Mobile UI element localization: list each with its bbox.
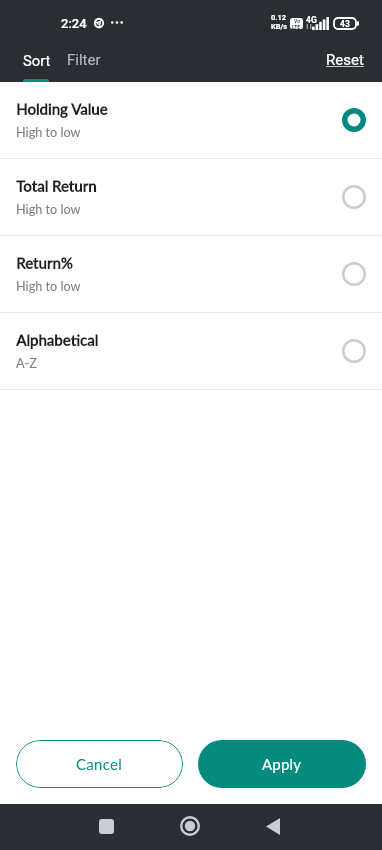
button[interactable]: Cancel — [16, 740, 183, 788]
button[interactable]: Return% — [0, 236, 382, 313]
staticText: A-Z — [16, 355, 37, 370]
staticText: KB/s — [271, 22, 288, 31]
button[interactable]: Holding Value — [0, 82, 382, 159]
staticText: 2:24 — [61, 16, 87, 31]
button[interactable]: Back — [243, 804, 303, 848]
staticText: Reset — [326, 51, 364, 69]
button[interactable]: Apply — [198, 740, 366, 788]
button[interactable]: Recent apps — [76, 804, 136, 848]
staticText: LTE — [292, 24, 301, 29]
button[interactable]: Filter — [60, 42, 110, 78]
staticText: Vo — [294, 18, 300, 24]
button[interactable]: Total Return — [0, 159, 382, 236]
staticText: 43 — [340, 19, 350, 29]
button[interactable]: Reset — [316, 42, 382, 78]
staticText: Holding Value — [16, 100, 108, 118]
staticText: Alphabetical — [16, 331, 99, 349]
staticText: Return% — [16, 254, 73, 272]
staticText: High to low — [16, 124, 81, 139]
staticText: Filter — [67, 51, 101, 69]
staticText: Total Return — [16, 177, 97, 195]
staticText: High to low — [16, 278, 81, 293]
button[interactable]: Sort — [0, 43, 60, 78]
staticText: Apply — [262, 755, 302, 773]
staticText: High to low — [16, 201, 81, 216]
staticText: Cancel — [76, 755, 123, 773]
staticText: 4G — [306, 15, 317, 25]
staticText: Sort — [23, 52, 51, 69]
button[interactable]: Alphabetical — [0, 313, 382, 390]
staticText: 0.12 — [271, 13, 287, 22]
button[interactable]: Home — [160, 804, 220, 848]
